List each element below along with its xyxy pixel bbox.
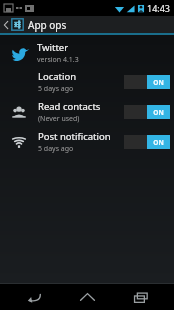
button[interactable]: Location (0, 67, 174, 97)
button[interactable]: Toggle permission (124, 135, 170, 149)
button[interactable]: Back (14, 284, 54, 310)
button[interactable]: Post notification (0, 127, 174, 157)
staticText: App ops (28, 18, 67, 32)
staticText: 5 days ago (38, 144, 74, 154)
button[interactable]: Home (67, 284, 107, 310)
staticText: ON (153, 108, 164, 117)
staticText: ON (153, 138, 164, 147)
button[interactable]: Toggle permission (124, 105, 170, 119)
staticText: 14:43 (147, 2, 171, 14)
button[interactable]: Twitter (0, 39, 174, 67)
button[interactable]: Toggle permission (124, 75, 170, 89)
button[interactable]: Read contacts (0, 97, 174, 127)
staticText: Read contacts (38, 100, 101, 113)
button[interactable]: Navigate up (0, 16, 174, 33)
staticText: Post notification (38, 130, 111, 143)
staticText: 5 days ago (38, 84, 74, 94)
button[interactable]: Recent apps (121, 284, 161, 310)
staticText: (Never used) (38, 114, 80, 124)
staticText: version 4.1.3 (37, 55, 79, 65)
staticText: ON (153, 78, 164, 87)
other: Navigate up (2, 18, 10, 32)
staticText: Location (38, 70, 77, 83)
staticText: Twitter (37, 41, 69, 54)
